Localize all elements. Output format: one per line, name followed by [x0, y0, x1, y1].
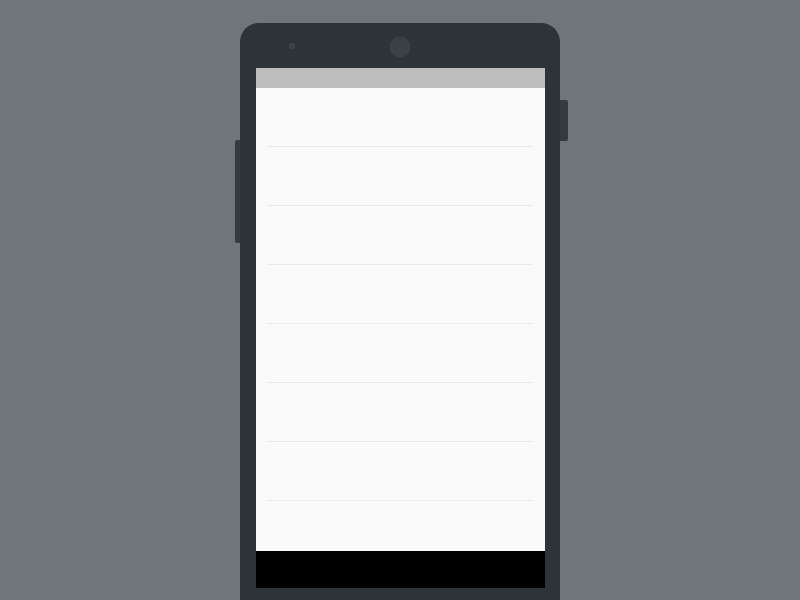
button[interactable]: Power button	[556, 100, 568, 141]
button[interactable]: Volume button	[235, 140, 243, 243]
